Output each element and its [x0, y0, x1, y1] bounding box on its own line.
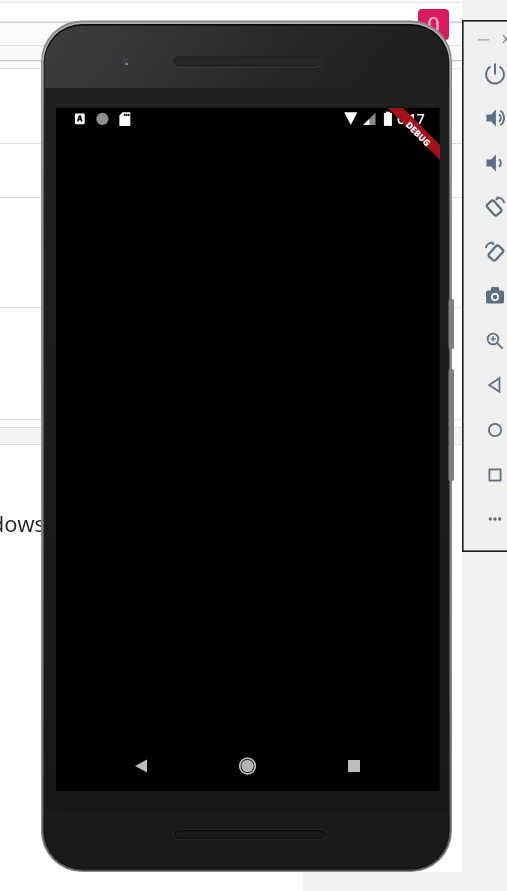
staticText: 0	[427, 9, 440, 40]
button[interactable]: Rotate left	[477, 189, 507, 225]
button[interactable]: Home	[477, 412, 507, 448]
button[interactable]: Zoom	[477, 323, 507, 359]
button[interactable]: Volume down	[477, 145, 507, 181]
staticText: Windows	[0, 508, 45, 538]
button[interactable]: Take screenshot	[477, 278, 507, 314]
staticText: DEBUG	[403, 119, 434, 150]
button[interactable]: Power	[477, 55, 507, 91]
button[interactable]: Overview	[477, 457, 507, 493]
staticText: 6:17	[397, 109, 425, 128]
button[interactable]: Volume up	[477, 100, 507, 136]
button[interactable]: More options	[477, 501, 507, 537]
button[interactable]: Back	[477, 367, 507, 403]
button[interactable]: Rotate right	[477, 234, 507, 270]
button[interactable]: App icon	[418, 9, 449, 40]
